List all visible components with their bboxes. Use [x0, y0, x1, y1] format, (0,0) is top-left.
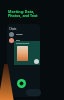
- button[interactable]: Jess: [9, 38, 39, 43]
- staticText: Chats: [9, 27, 17, 31]
- button[interactable]: Family: [9, 32, 39, 37]
- button[interactable]: Camera: [34, 59, 39, 64]
- button[interactable]: [26, 89, 41, 96]
- staticText: Jess: [16, 39, 20, 42]
- staticText: Meeting: Data, Photos, and Text: [8, 9, 39, 19]
- staticText: Shared album: [16, 42, 30, 45]
- button[interactable]: Record: [17, 79, 26, 88]
- staticText: Family: [16, 33, 23, 36]
